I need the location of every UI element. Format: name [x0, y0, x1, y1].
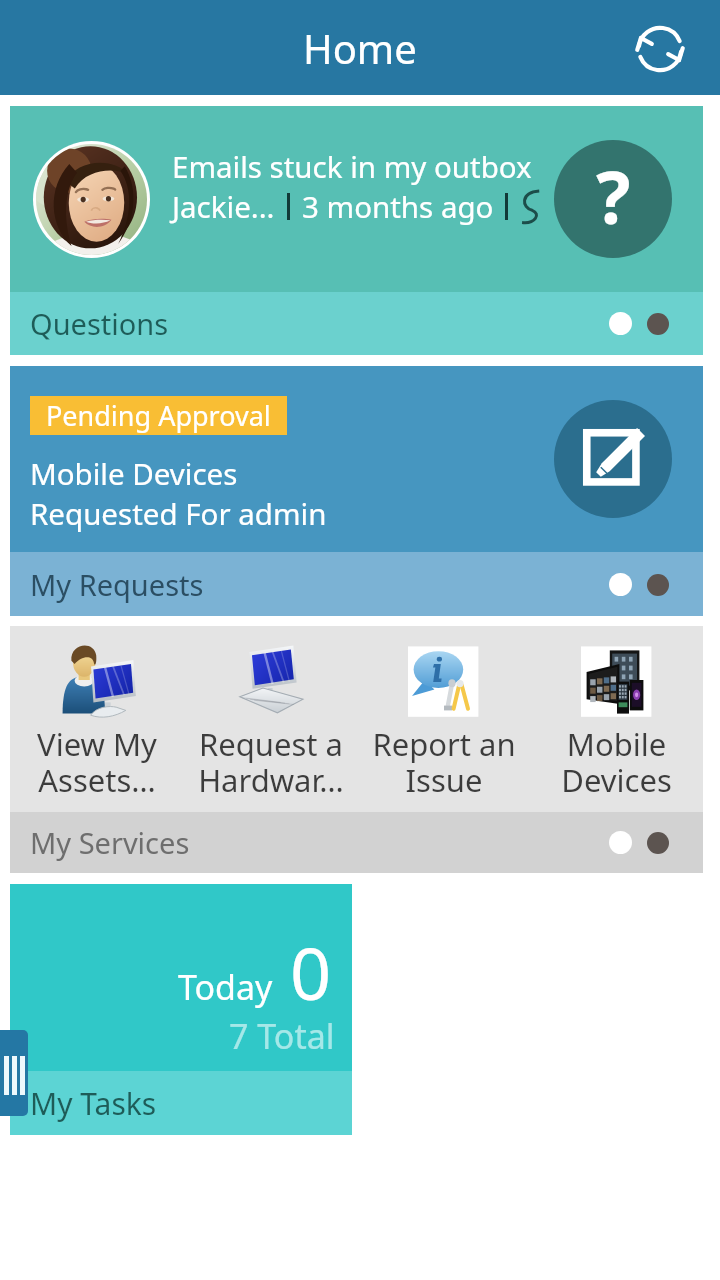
button[interactable]: Open navigation drawer — [0, 1030, 28, 1116]
staticText: Mobile Devices — [561, 723, 672, 801]
button[interactable]: My Requests — [10, 552, 703, 616]
button[interactable]: Today — [10, 884, 352, 1071]
staticText: Request a Hardwar… — [198, 723, 344, 801]
button[interactable]: Mobile Devices — [530, 640, 703, 801]
staticText: ? — [596, 147, 631, 245]
button[interactable]: Questions — [10, 292, 703, 355]
staticText: View My Assets… — [37, 723, 157, 801]
staticText: Home — [303, 21, 417, 75]
staticText: 7 Total — [229, 1013, 335, 1059]
staticText: My Requests — [30, 565, 204, 604]
button[interactable]: View My Assets… — [10, 626, 703, 812]
button[interactable]: My Services — [10, 812, 703, 873]
staticText: Questions — [30, 304, 169, 343]
button[interactable]: Pending Approval — [10, 366, 703, 552]
button[interactable]: Report an Issue — [357, 640, 530, 801]
staticText: Pending Approval — [46, 397, 271, 434]
button[interactable]: Emails stuck in my outbox — [10, 106, 703, 292]
button[interactable]: Help — [554, 140, 672, 258]
button[interactable]: View My Assets… — [10, 640, 184, 801]
staticText: Emails stuck in my outbox — [172, 146, 532, 186]
staticText: Today — [178, 964, 273, 1010]
staticText: My Tasks — [30, 1083, 157, 1124]
staticText: 3 months ago — [302, 186, 494, 226]
staticText: 0 — [290, 923, 332, 1021]
staticText: Jackie... — [172, 186, 275, 226]
button[interactable]: Edit request — [554, 400, 672, 518]
button[interactable]: My Tasks — [10, 1071, 352, 1135]
staticText: Report an Issue — [372, 723, 516, 801]
staticText: Mobile Devices Requested For admin — [30, 453, 327, 534]
button[interactable]: Request a Hardwar… — [184, 640, 357, 801]
staticText: My Services — [30, 823, 190, 862]
button[interactable]: Refresh — [628, 16, 692, 80]
